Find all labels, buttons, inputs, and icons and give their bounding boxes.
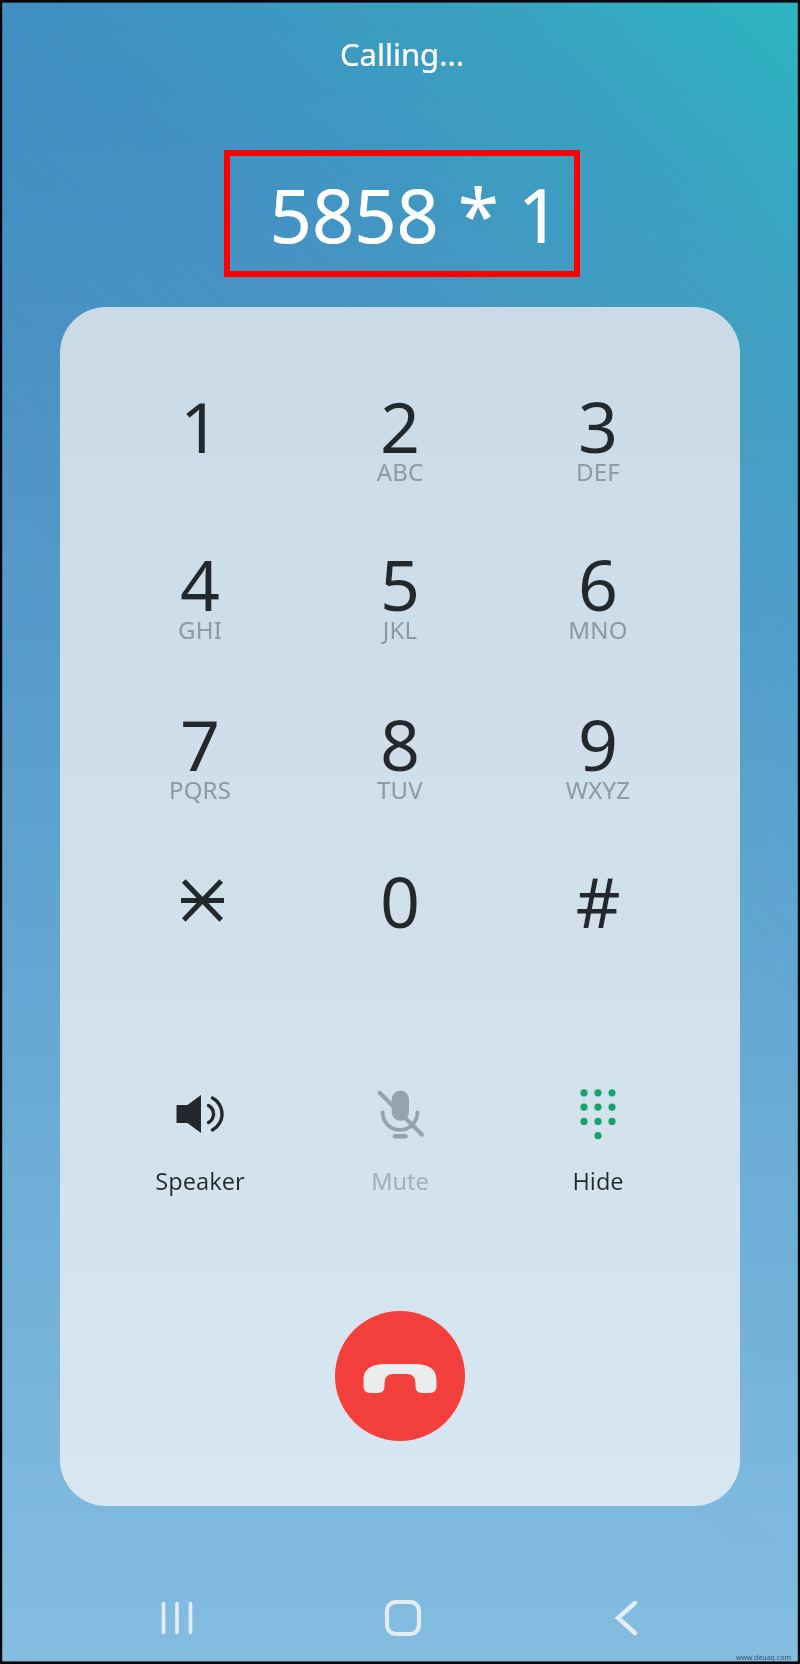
staticText: JKL — [325, 613, 475, 646]
staticText: PQRS — [125, 773, 275, 806]
staticText: 9 — [523, 696, 673, 791]
button[interactable]: 0 — [325, 853, 475, 1003]
staticText: 4 — [125, 536, 275, 631]
staticText: 3 — [523, 378, 673, 473]
staticText: 0 — [325, 853, 475, 948]
staticText: Calling... — [2, 33, 800, 75]
button[interactable] — [125, 853, 275, 1003]
staticText: Hide — [523, 1165, 673, 1197]
staticText: Speaker — [125, 1165, 275, 1197]
button[interactable]: # — [523, 853, 673, 1003]
button[interactable]: 1 — [125, 378, 275, 528]
staticText: GHI — [125, 613, 275, 646]
staticText: 8 — [325, 696, 475, 791]
button[interactable]: Hide — [523, 1077, 673, 1217]
staticText: MNO — [523, 613, 673, 646]
button[interactable]: 3 — [523, 378, 673, 528]
staticText: 6 — [523, 536, 673, 631]
button[interactable]: Home — [333, 1573, 473, 1663]
staticText: Mute — [325, 1165, 475, 1197]
staticText: 2 — [325, 378, 475, 473]
button[interactable]: 9 — [523, 696, 673, 846]
button[interactable]: Back — [557, 1573, 697, 1663]
button[interactable]: End call — [335, 1311, 465, 1441]
button[interactable]: 2 — [325, 378, 475, 528]
button[interactable]: Mute — [325, 1077, 475, 1217]
staticText: WXYZ — [523, 773, 673, 806]
staticText: DEF — [523, 455, 673, 488]
staticText: 5 — [325, 536, 475, 631]
button[interactable]: 7 — [125, 696, 275, 846]
button[interactable]: Speaker — [125, 1077, 275, 1217]
button[interactable]: Recent apps — [107, 1573, 247, 1663]
staticText: # — [523, 853, 673, 948]
staticText: 7 — [125, 696, 275, 791]
staticText: www.deuaq.com — [736, 1653, 791, 1663]
staticText: TUV — [325, 773, 475, 806]
staticText: 1 — [125, 378, 275, 473]
button[interactable]: 8 — [325, 696, 475, 846]
button[interactable]: 5 — [325, 536, 475, 686]
button[interactable]: 4 — [125, 536, 275, 686]
button[interactable]: 6 — [523, 536, 673, 686]
staticText: ABC — [325, 455, 475, 488]
staticText: 5858 * 1 — [15, 164, 800, 265]
